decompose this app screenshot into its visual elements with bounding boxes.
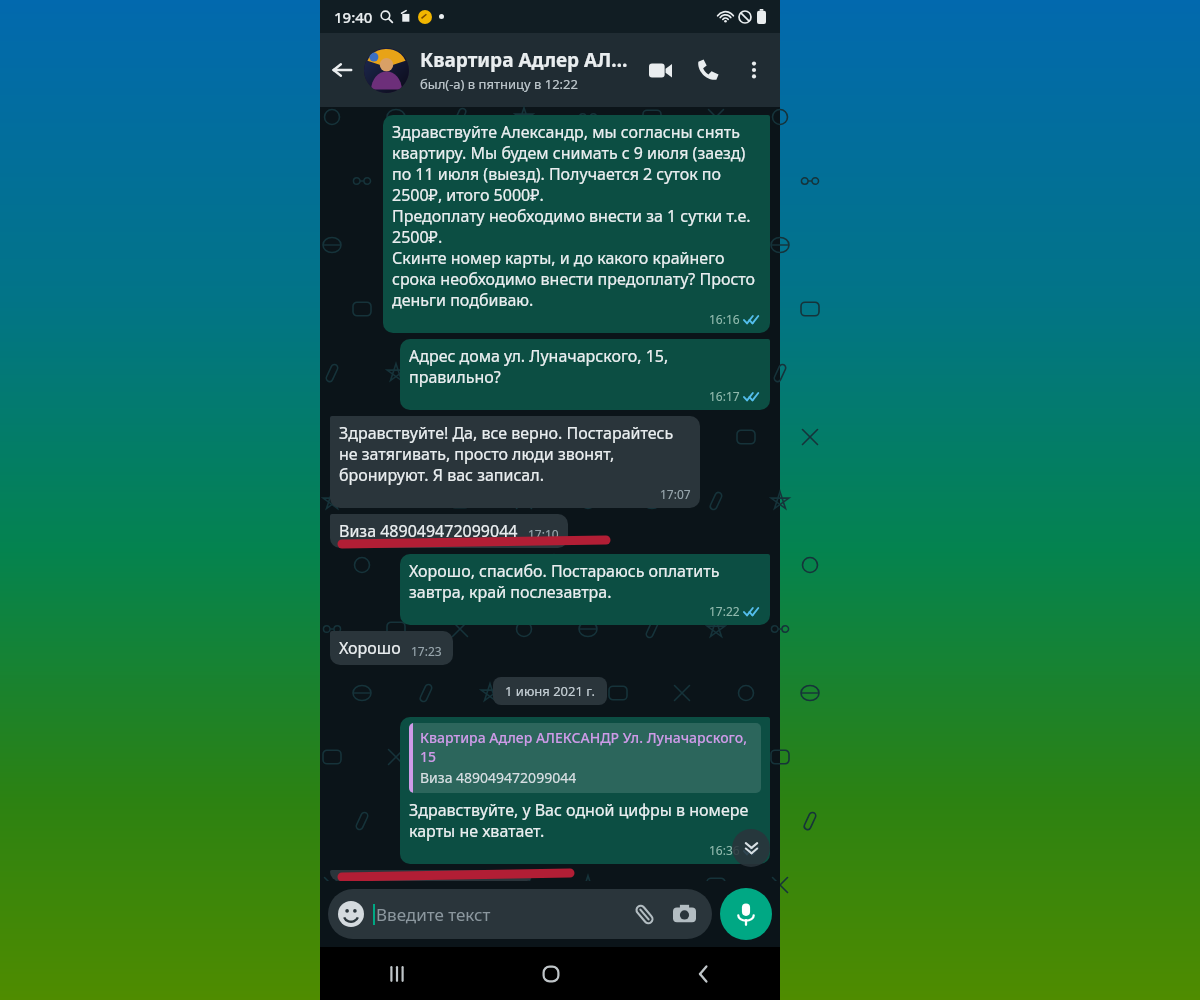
staticText: 17:10 <box>528 526 559 542</box>
button[interactable]: Квартира Адлер АЛЕК… <box>420 47 636 93</box>
staticText: Виза 489049472099044 <box>420 768 577 787</box>
staticText: Хорошо, спасибо. Постараюсь оплатить зав… <box>409 560 761 603</box>
staticText: Виза 489049472099044 <box>339 520 518 542</box>
button[interactable]: Emoji <box>338 901 364 927</box>
button[interactable]: Здравствуйте Александр, мы согласны снят… <box>383 115 770 333</box>
staticText: 19:40 <box>334 7 373 27</box>
button[interactable]: Scroll to bottom <box>732 829 770 867</box>
staticText: был(-а) в пятницу в 12:22 <box>420 75 578 93</box>
staticText: Хорошо <box>339 637 401 659</box>
button[interactable]: Back <box>627 947 780 1000</box>
staticText: Здравствуйте, у Вас одной цифры в номере… <box>409 799 761 842</box>
staticText: 1 июня 2021 г. <box>505 682 595 700</box>
staticText: Адрес дома ул. Луначарского, 15, правиль… <box>409 345 761 388</box>
button[interactable]: Emoji <box>328 889 712 939</box>
staticText: 17:07 <box>660 486 691 502</box>
button[interactable]: Хорошо, спасибо. Постараюсь оплатить зав… <box>400 554 770 625</box>
button[interactable]: Здравствуйте! Да, все верно. Постарайтес… <box>330 416 700 508</box>
button[interactable]: Recent apps <box>320 947 474 1000</box>
staticText: Квартира Адлер АЛЕК… <box>420 47 636 73</box>
staticText: 16:36 <box>709 842 740 858</box>
staticText: Здравствуйте! Да, все верно. Постарайтес… <box>339 422 691 486</box>
button[interactable]: Camera <box>670 900 698 928</box>
button[interactable]: Profile photo <box>364 48 409 93</box>
button[interactable]: Voice call <box>684 46 732 94</box>
button[interactable]: 4890494720990944 <box>330 870 532 881</box>
staticText: Здравствуйте Александр, мы согласны снят… <box>392 121 761 311</box>
button[interactable]: Attach <box>630 900 658 928</box>
staticText: Квартира Адлер АЛЕКСАНДР Ул. Луначарског… <box>420 728 755 766</box>
staticText: 17:23 <box>411 643 442 659</box>
button[interactable]: More options <box>732 48 776 92</box>
button[interactable]: Video call <box>636 46 684 94</box>
staticText: Введите текст <box>376 903 491 926</box>
button[interactable]: Хорошо <box>330 631 453 665</box>
button[interactable]: Back <box>320 48 364 92</box>
button[interactable]: Voice message <box>720 888 772 940</box>
staticText: 17:22 <box>709 603 740 619</box>
button[interactable]: Адрес дома ул. Луначарского, 15, правиль… <box>400 339 770 410</box>
button[interactable]: Виза 489049472099044 <box>330 514 568 548</box>
staticText: 16:17 <box>709 388 740 404</box>
button[interactable]: Квартира Адлер АЛЕКСАНДР Ул. Луначарског… <box>400 717 770 864</box>
staticText: 16:16 <box>709 311 740 327</box>
button[interactable]: Home <box>474 947 627 1000</box>
